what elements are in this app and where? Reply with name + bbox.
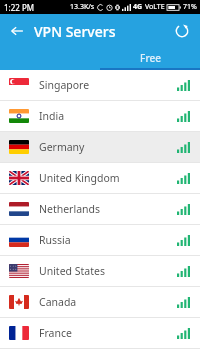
button[interactable]: Singapore <box>0 70 200 100</box>
button[interactable]: Russia <box>0 225 200 255</box>
button[interactable]: Back <box>4 18 30 44</box>
staticText: Singapore <box>39 78 177 92</box>
staticText: Canada <box>39 295 177 309</box>
staticText: 13.3K/s <box>70 2 95 12</box>
button[interactable]: France <box>0 318 200 348</box>
staticText: 4G <box>133 2 143 12</box>
staticText: Netherlands <box>39 202 177 216</box>
button[interactable]: Free <box>100 48 200 68</box>
staticText: VoLTE <box>145 2 165 12</box>
staticText: Germany <box>39 140 177 154</box>
button[interactable]: United States <box>0 256 200 286</box>
staticText: 1:22 PM <box>4 2 35 13</box>
staticText: India <box>39 109 177 123</box>
staticText: VPN Servers <box>34 22 116 41</box>
staticText: Russia <box>39 233 177 247</box>
button[interactable]: Germany <box>0 132 200 162</box>
staticText: United Kingdom <box>39 171 177 185</box>
button[interactable]: Netherlands <box>0 194 200 224</box>
button[interactable]: United Kingdom <box>0 163 200 193</box>
button[interactable]: India <box>0 101 200 131</box>
button[interactable]: Refresh <box>169 18 195 44</box>
staticText: 71% <box>183 2 197 12</box>
staticText: France <box>39 326 177 340</box>
staticText: United States <box>39 264 177 278</box>
button[interactable]: Canada <box>0 287 200 317</box>
staticText: Free <box>140 51 161 65</box>
